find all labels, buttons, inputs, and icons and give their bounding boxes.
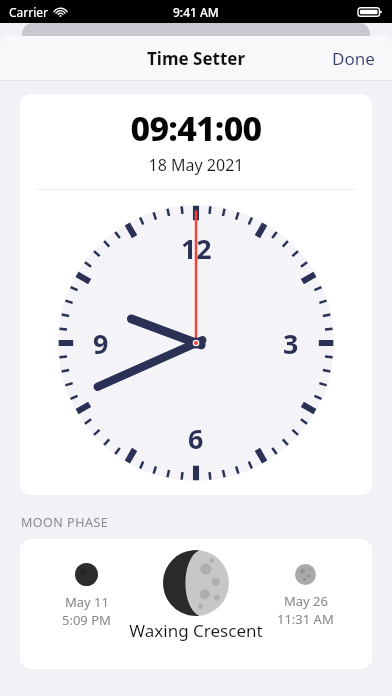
staticText: 11:31 AM <box>277 610 334 628</box>
staticText: 9:41 AM <box>173 4 219 20</box>
staticText: 18 May 2021 <box>20 154 372 176</box>
staticText: MOON PHASE <box>21 514 109 531</box>
staticText: Waxing Crescent <box>129 619 263 642</box>
staticText: May 26 <box>284 592 328 610</box>
button[interactable]: Done <box>315 36 392 80</box>
staticText: 6 <box>188 420 204 456</box>
staticText: Done <box>332 47 375 69</box>
staticText: 5:09 PM <box>62 611 111 629</box>
button[interactable]: New moon <box>20 539 372 669</box>
other: New moon <box>75 563 98 586</box>
staticText: 9 <box>93 325 109 361</box>
staticText: May 11 <box>65 593 109 611</box>
button[interactable]: 09:41:00 <box>20 94 372 495</box>
other: Full moon <box>295 564 316 585</box>
other: Waxing crescent moon <box>163 550 229 616</box>
staticText: Time Setter <box>147 47 246 70</box>
staticText: 09:41:00 <box>20 105 372 151</box>
staticText: Carrier <box>9 4 49 20</box>
staticText: 12 <box>181 230 212 266</box>
staticText: 3 <box>283 325 299 361</box>
